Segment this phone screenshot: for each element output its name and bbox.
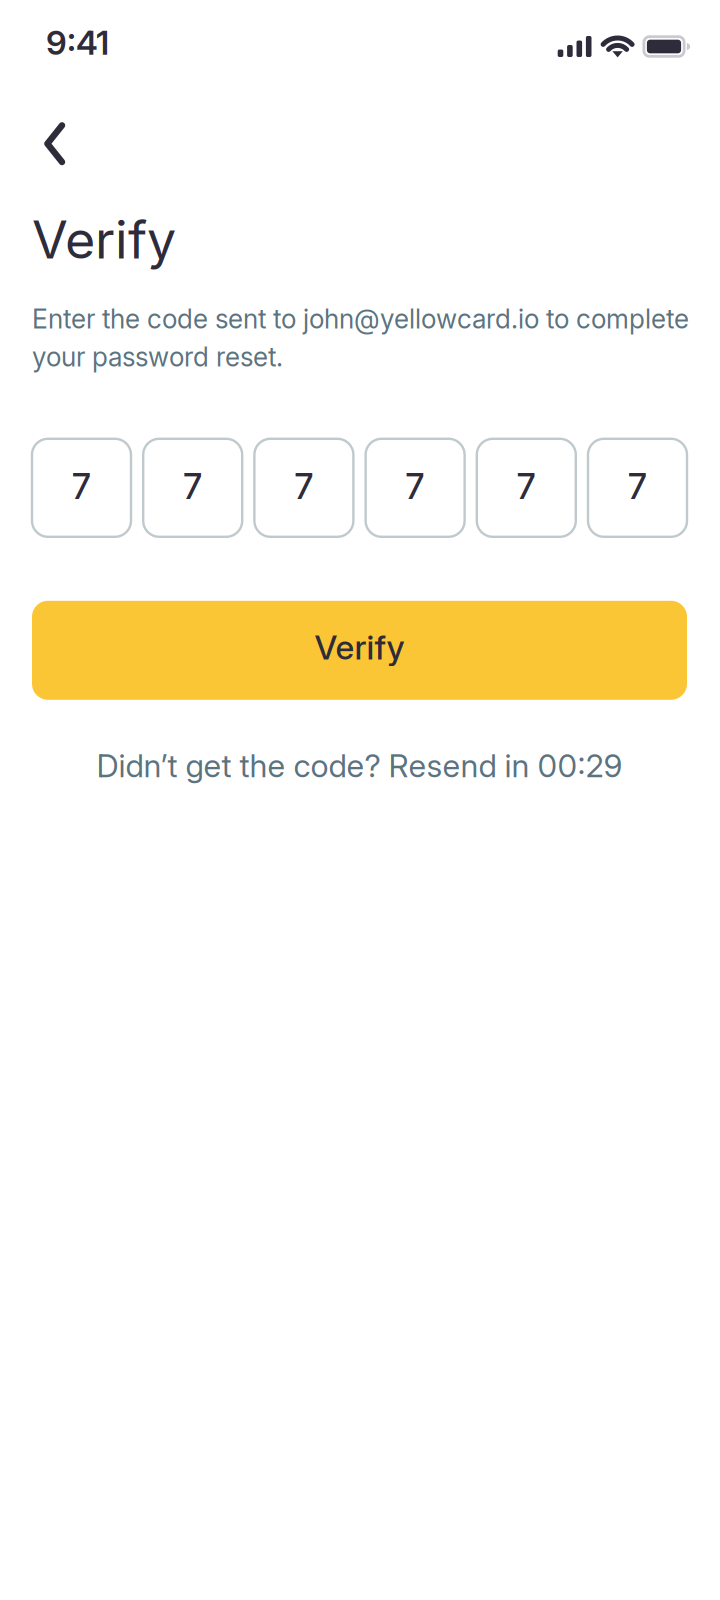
staticText: 7 <box>517 465 536 507</box>
staticText: Didn’t get the code? Resend in 00:29 <box>96 747 622 785</box>
button[interactable]: Back <box>0 114 92 174</box>
staticText: 7 <box>72 465 91 507</box>
button[interactable]: Verification code digit 3 <box>254 439 353 537</box>
staticText: Enter the code sent to john@yellowcard.i… <box>32 303 689 373</box>
button[interactable]: Verify <box>32 601 687 700</box>
staticText: 7 <box>294 465 313 507</box>
button[interactable]: Didn’t get the code? Resend in 00:29 <box>32 747 687 787</box>
button[interactable]: Verification code digit 2 <box>143 439 242 537</box>
button[interactable]: Verification code digit 4 <box>366 439 465 537</box>
staticText: 7 <box>183 465 202 507</box>
staticText: 9:41 <box>46 22 109 63</box>
staticText: Verify <box>314 627 404 667</box>
button[interactable]: Verification code digit 1 <box>32 439 131 537</box>
staticText: 7 <box>406 465 425 507</box>
button[interactable]: Verification code digit 5 <box>477 439 576 537</box>
staticText: 7 <box>628 465 647 507</box>
staticText: Verify <box>32 208 176 271</box>
button[interactable]: Verification code digit 6 <box>588 439 687 537</box>
